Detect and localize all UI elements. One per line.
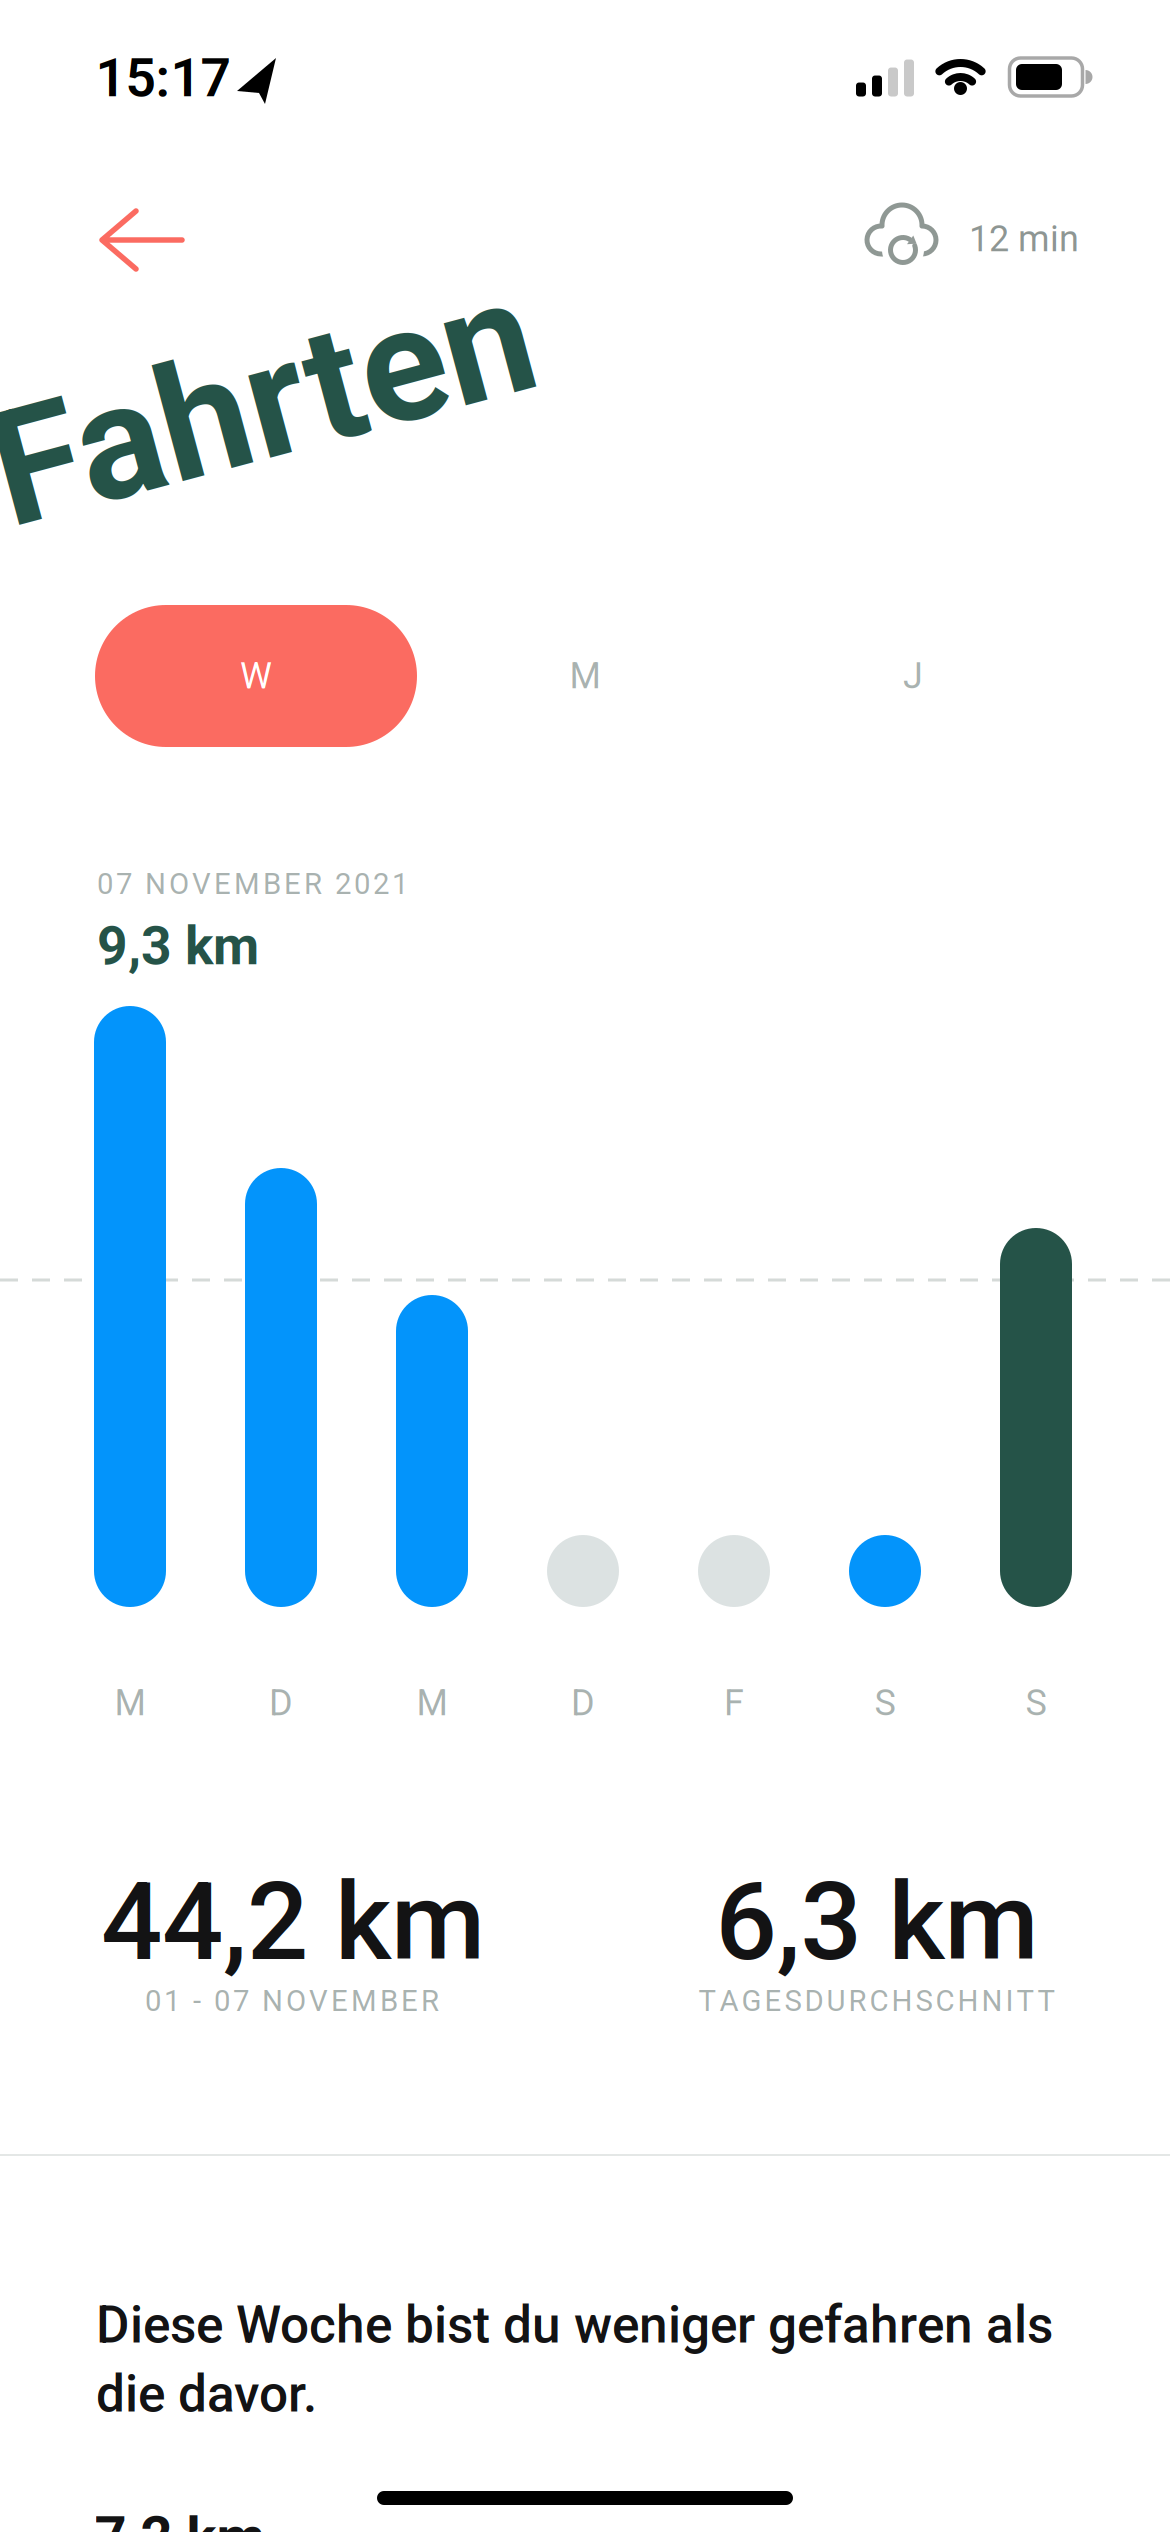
staticText: F bbox=[724, 1682, 744, 1723]
staticText: 6,3 km bbox=[715, 1859, 1038, 1985]
staticText: M bbox=[569, 655, 600, 696]
staticText: M bbox=[114, 1682, 145, 1723]
staticText: 0 7 N O V E M B E R 2 0 2 1 bbox=[97, 867, 408, 901]
button[interactable]: M bbox=[424, 605, 746, 747]
staticText: Diese Woche bist du weniger gefahren als bbox=[96, 2295, 1053, 2355]
staticText: M bbox=[416, 1682, 447, 1723]
button[interactable]: W bbox=[95, 605, 417, 747]
staticText: 12 min bbox=[969, 218, 1079, 259]
staticText: Fahrten bbox=[0, 312, 540, 494]
staticText: die davor. bbox=[96, 2364, 317, 2424]
staticText: S bbox=[874, 1682, 895, 1723]
staticText: 0 1 - 0 7 N O V E M B E R bbox=[145, 1984, 439, 2018]
staticText: T A G E S D U R C H S C H N I T T bbox=[698, 1984, 1055, 2018]
button[interactable]: Back bbox=[82, 190, 202, 290]
staticText: W bbox=[240, 655, 272, 696]
button[interactable]: Sync bbox=[854, 186, 1084, 286]
staticText: J bbox=[903, 655, 923, 696]
staticText: 7,2 km bbox=[94, 2505, 265, 2532]
staticText: S bbox=[1025, 1682, 1046, 1723]
staticText: 15:17 bbox=[95, 47, 230, 108]
staticText: 9,3 km bbox=[97, 915, 259, 976]
staticText: D bbox=[269, 1682, 293, 1723]
button[interactable]: J bbox=[752, 605, 1074, 747]
staticText: D bbox=[571, 1682, 595, 1723]
staticText: 44,2 km bbox=[101, 1859, 485, 1985]
